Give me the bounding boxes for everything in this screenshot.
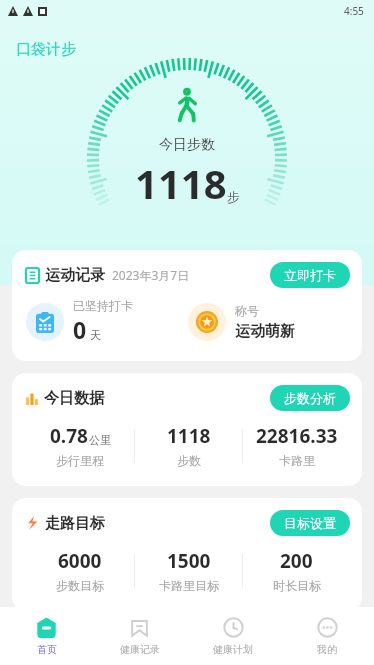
staticText: 时长目标 <box>273 578 321 593</box>
staticText: 口袋计步 <box>16 40 76 59</box>
button[interactable]: 首页 <box>0 616 93 656</box>
staticText: 今日数据 <box>44 389 104 408</box>
button[interactable]: 步数分析 <box>270 385 350 411</box>
button[interactable]: 健康记录 <box>93 616 186 656</box>
staticText: 今日步数 <box>159 136 215 154</box>
button[interactable]: 我的 <box>280 616 374 656</box>
button[interactable]: 健康计划 <box>186 616 280 656</box>
staticText: 卡路里目标 <box>159 578 219 593</box>
staticText: 1118 <box>167 423 211 449</box>
button[interactable]: 立即打卡 <box>270 262 350 288</box>
staticText: 2023年3月7日 <box>112 267 190 283</box>
staticText: 4:55 <box>344 4 364 18</box>
button[interactable]: 目标设置 <box>270 510 350 536</box>
staticText: 健康计划 <box>213 643 253 656</box>
staticText: 6000 <box>58 548 102 574</box>
staticText: 步数目标 <box>56 578 104 593</box>
staticText: 步 <box>227 189 240 205</box>
staticText: 我的 <box>317 643 337 656</box>
staticText: 1118 <box>135 156 227 210</box>
staticText: 步数 <box>177 453 201 468</box>
staticText: 0 <box>73 314 87 345</box>
staticText: 称号 <box>235 303 259 318</box>
staticText: 运动萌新 <box>235 322 295 341</box>
staticText: 已坚持打卡 <box>73 298 133 313</box>
staticText: 步行里程 <box>56 453 104 468</box>
staticText: 健康记录 <box>120 643 160 656</box>
staticText: 走路目标 <box>45 514 105 533</box>
staticText: 目标设置 <box>284 515 336 531</box>
staticText: 0.78 <box>50 423 88 449</box>
staticText: 首页 <box>37 643 57 656</box>
staticText: 200 <box>280 548 313 574</box>
staticText: 卡路里 <box>279 453 315 468</box>
staticText: 1500 <box>167 548 211 574</box>
staticText: 天 <box>90 328 101 342</box>
staticText: 步数分析 <box>284 390 336 406</box>
staticText: 22816.33 <box>256 423 338 449</box>
staticText: 公里 <box>89 433 111 447</box>
staticText: 运动记录 <box>45 266 105 285</box>
staticText: 立即打卡 <box>284 267 336 283</box>
